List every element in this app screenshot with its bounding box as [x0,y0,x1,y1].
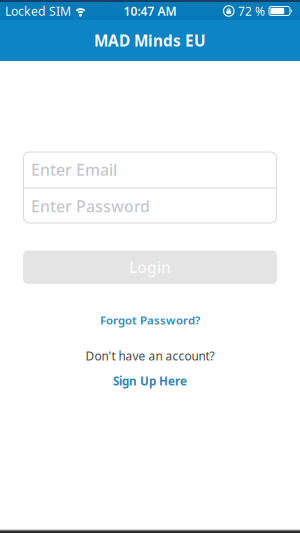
staticText: MAD Minds EU [94,30,206,51]
staticText: Sign Up Here [113,373,187,389]
button[interactable]: Forgot Password? [100,311,200,329]
staticText: 10:47 AM [123,3,176,19]
button[interactable]: Enter Password [23,188,277,223]
staticText: Don't have an account? [85,348,214,364]
button[interactable]: Sign Up Here [113,372,187,390]
staticText: 72 % [238,3,265,19]
staticText: Enter Email [31,159,117,180]
button[interactable]: Login [23,250,277,284]
staticText: Locked SIM [5,3,71,19]
staticText: Login [129,257,171,277]
button[interactable]: Enter Email [23,151,277,187]
staticText: Enter Password [31,195,150,217]
staticText: Forgot Password? [100,312,200,328]
